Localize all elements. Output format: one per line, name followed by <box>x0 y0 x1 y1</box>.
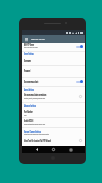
staticText: Use anonymous login <box>24 80 38 83</box>
staticText: Setup the FTP folder and the camera path <box>24 132 49 135</box>
staticText: Password <box>24 69 30 72</box>
staticText: 2221 <box>24 113 27 116</box>
staticText: Select Text file location (Full FTP Rebo… <box>24 139 51 142</box>
staticText: WiFi FTP Server <box>24 43 34 46</box>
staticText: Storage / Camera Settings <box>24 130 41 133</box>
staticText: Advanced settings <box>24 104 36 107</box>
staticText: Create, delete, rename, upload files <box>24 96 45 99</box>
staticText: Port Number <box>24 110 33 113</box>
button[interactable]: Back <box>34 147 39 152</box>
button[interactable]: Navigation menu <box>24 37 29 42</box>
staticText: Server Settings <box>24 52 34 55</box>
staticText: Create, delete, rename, upload files <box>24 96 45 99</box>
staticText: Server Settings <box>24 52 34 55</box>
staticText: Username <box>24 59 31 62</box>
button[interactable]: Set anonymous login permissions <box>22 92 85 102</box>
button[interactable]: Toggle <box>76 79 83 84</box>
button[interactable]: Use anonymous login <box>22 77 85 86</box>
staticText: Select Text file location (Full FTP Rebo… <box>24 139 51 142</box>
staticText: ftp://192.168.0.101:2221 <box>24 45 38 48</box>
staticText: Storage / Camera Settings <box>24 130 41 133</box>
staticText: WiFi FTP Server <box>24 43 34 46</box>
button[interactable]: Toggle <box>76 44 83 49</box>
button[interactable]: Enable STDOU logging <box>22 117 85 127</box>
button[interactable]: Select folder <box>22 134 85 144</box>
staticText: Username <box>24 59 31 62</box>
staticText: Show notification while server runs <box>24 122 45 125</box>
staticText: ftp://192.168.0.101:2221 <box>24 45 38 48</box>
staticText: Access Settings <box>24 88 34 91</box>
button[interactable]: Recent apps <box>68 147 73 152</box>
button[interactable]: Toggle <box>77 138 83 143</box>
staticText: Use anonymous login <box>24 80 38 83</box>
staticText: WiFi FTP Server <box>31 38 45 41</box>
button[interactable]: WiFi FTP Server status <box>22 43 85 51</box>
staticText: Port Number <box>24 110 33 113</box>
button[interactable]: Username <box>22 56 85 66</box>
staticText: Show notification while server runs <box>24 122 45 125</box>
staticText: Password <box>24 69 30 72</box>
staticText: Set anonymous login permissions <box>24 93 46 96</box>
button[interactable]: Toggle <box>77 94 83 99</box>
staticText: Set anonymous login permissions <box>24 93 46 96</box>
button[interactable]: Password <box>22 65 85 77</box>
staticText: Setup the FTP folder and the camera path <box>24 132 49 135</box>
staticText: Enable STDOU <box>24 119 33 122</box>
button[interactable]: Home <box>51 147 56 152</box>
staticText: Advanced settings <box>24 104 36 107</box>
staticText: Enable STDOU <box>24 119 33 122</box>
button[interactable]: Port number <box>22 108 85 118</box>
staticText: Access Settings <box>24 88 34 91</box>
staticText: 2221 <box>24 113 27 116</box>
